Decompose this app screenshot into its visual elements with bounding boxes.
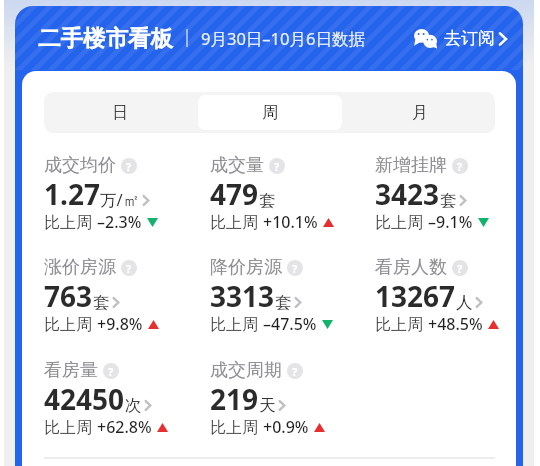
staticText: 比上周 bbox=[44, 211, 97, 233]
button[interactable]: 新增挂牌 bbox=[375, 154, 516, 242]
button[interactable]: 月 bbox=[348, 95, 492, 130]
other: WeChat bbox=[414, 29, 437, 48]
staticText: 人 bbox=[456, 292, 473, 313]
staticText: 次 bbox=[125, 395, 142, 416]
staticText: –47.5% bbox=[263, 313, 317, 335]
staticText: 月 bbox=[412, 103, 428, 123]
button[interactable]: 成交均价 bbox=[44, 154, 204, 242]
staticText: 比上周 bbox=[210, 313, 263, 335]
staticText: 比上周 bbox=[375, 211, 428, 233]
staticText: 新增挂牌 bbox=[375, 154, 447, 177]
staticText: ? bbox=[292, 364, 298, 379]
staticText: 看房量 bbox=[44, 359, 98, 382]
staticText: 日 bbox=[112, 103, 128, 123]
button[interactable]: Help bbox=[121, 158, 137, 174]
button[interactable]: 看房人数 bbox=[375, 256, 516, 344]
staticText: +48.5% bbox=[428, 313, 483, 335]
button[interactable]: Help bbox=[121, 260, 137, 276]
staticText: ? bbox=[126, 261, 132, 276]
staticText: 套 bbox=[259, 190, 276, 211]
button[interactable]: Help bbox=[452, 260, 468, 276]
button[interactable]: Help bbox=[269, 158, 285, 174]
staticText: +9.8% bbox=[97, 313, 143, 335]
staticText: ? bbox=[126, 159, 132, 174]
staticText: 套 bbox=[275, 292, 292, 313]
staticText: +62.8% bbox=[97, 416, 152, 438]
staticText: 219 bbox=[210, 380, 259, 418]
button[interactable]: 成交量 bbox=[210, 154, 370, 242]
staticText: 比上周 bbox=[44, 416, 97, 438]
staticText: 涨价房源 bbox=[44, 256, 116, 279]
button[interactable]: Help bbox=[287, 260, 303, 276]
button[interactable]: Help bbox=[452, 158, 468, 174]
button[interactable]: 涨价房源 bbox=[44, 256, 204, 344]
button[interactable]: 周 bbox=[198, 95, 342, 130]
button[interactable]: 降价房源 bbox=[210, 256, 370, 344]
staticText: 成交量 bbox=[210, 154, 264, 177]
staticText: 比上周 bbox=[210, 211, 263, 233]
staticText: 13267 bbox=[375, 277, 456, 315]
staticText: 成交均价 bbox=[44, 154, 116, 177]
staticText: 去订阅 bbox=[444, 28, 495, 49]
staticText: 降价房源 bbox=[210, 256, 282, 279]
staticText: –9.1% bbox=[428, 211, 473, 233]
staticText: 3423 bbox=[375, 175, 440, 213]
staticText: 比上周 bbox=[375, 313, 428, 335]
staticText: 9月30日–10月6日数据 bbox=[201, 27, 365, 50]
staticText: 套 bbox=[440, 190, 457, 211]
staticText: +10.1% bbox=[263, 211, 318, 233]
staticText: 二手楼市看板 bbox=[38, 24, 173, 52]
staticText: 比上周 bbox=[210, 416, 263, 438]
staticText: 万/㎡ bbox=[100, 188, 140, 211]
staticText: 看房人数 bbox=[375, 256, 447, 279]
staticText: 天 bbox=[259, 395, 276, 416]
button[interactable]: 日 bbox=[47, 95, 192, 130]
staticText: ? bbox=[108, 364, 114, 379]
button[interactable]: WeChat bbox=[414, 28, 507, 49]
staticText: 套 bbox=[93, 292, 110, 313]
button[interactable]: Help bbox=[103, 363, 119, 379]
staticText: ? bbox=[457, 261, 463, 276]
staticText: –2.3% bbox=[97, 211, 142, 233]
button[interactable]: 看房量 bbox=[44, 359, 204, 447]
staticText: 周 bbox=[262, 103, 278, 123]
staticText: +0.9% bbox=[263, 416, 309, 438]
staticText: 763 bbox=[44, 277, 93, 315]
staticText: ? bbox=[274, 159, 280, 174]
staticText: 3313 bbox=[210, 277, 275, 315]
staticText: 成交周期 bbox=[210, 359, 282, 382]
staticText: ? bbox=[292, 261, 298, 276]
staticText: 1.27 bbox=[44, 175, 100, 213]
staticText: 比上周 bbox=[44, 313, 97, 335]
button[interactable]: 成交周期 bbox=[210, 359, 370, 447]
button[interactable]: Help bbox=[287, 363, 303, 379]
staticText: 42450 bbox=[44, 380, 125, 418]
staticText: ? bbox=[457, 159, 463, 174]
staticText: 479 bbox=[210, 175, 259, 213]
